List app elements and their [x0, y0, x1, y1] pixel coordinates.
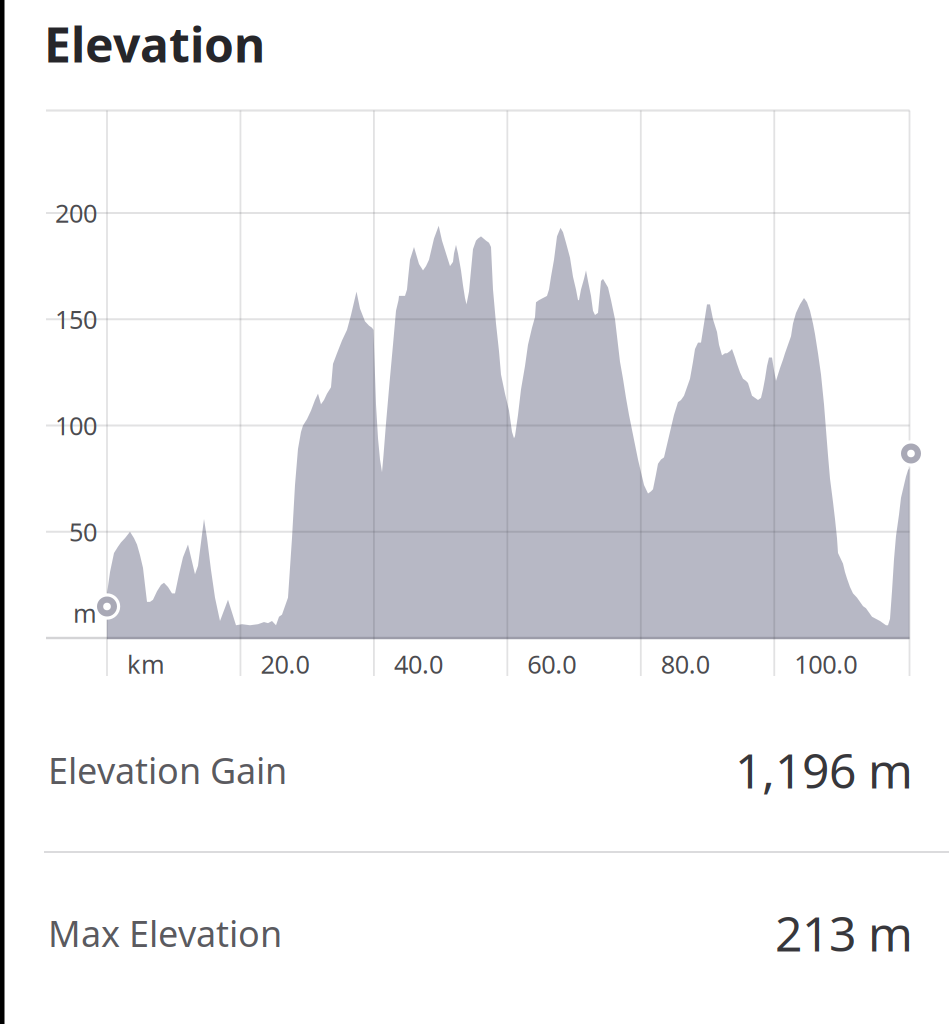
staticText: 100.0 [794, 647, 857, 681]
staticText: Elevation [44, 12, 265, 76]
staticText: Elevation Gain [48, 746, 287, 794]
staticText: 213 m [775, 901, 913, 965]
staticText: 200 [55, 196, 97, 230]
button[interactable]: Elevation Gain [0, 0, 865, 86]
staticText: 60.0 [527, 647, 576, 681]
staticText: Max Elevation [48, 909, 282, 957]
staticText: 40.0 [394, 647, 443, 681]
staticText: 20.0 [260, 647, 309, 681]
staticText: 1,196 m [735, 738, 913, 802]
staticText: 80.0 [661, 647, 710, 681]
staticText: 50 [69, 515, 97, 548]
staticText: 150 [55, 302, 97, 336]
button[interactable]: Max Elevation [0, 0, 865, 86]
staticText: m [73, 596, 97, 630]
staticText: 100 [55, 409, 97, 442]
staticText: km [127, 647, 165, 681]
